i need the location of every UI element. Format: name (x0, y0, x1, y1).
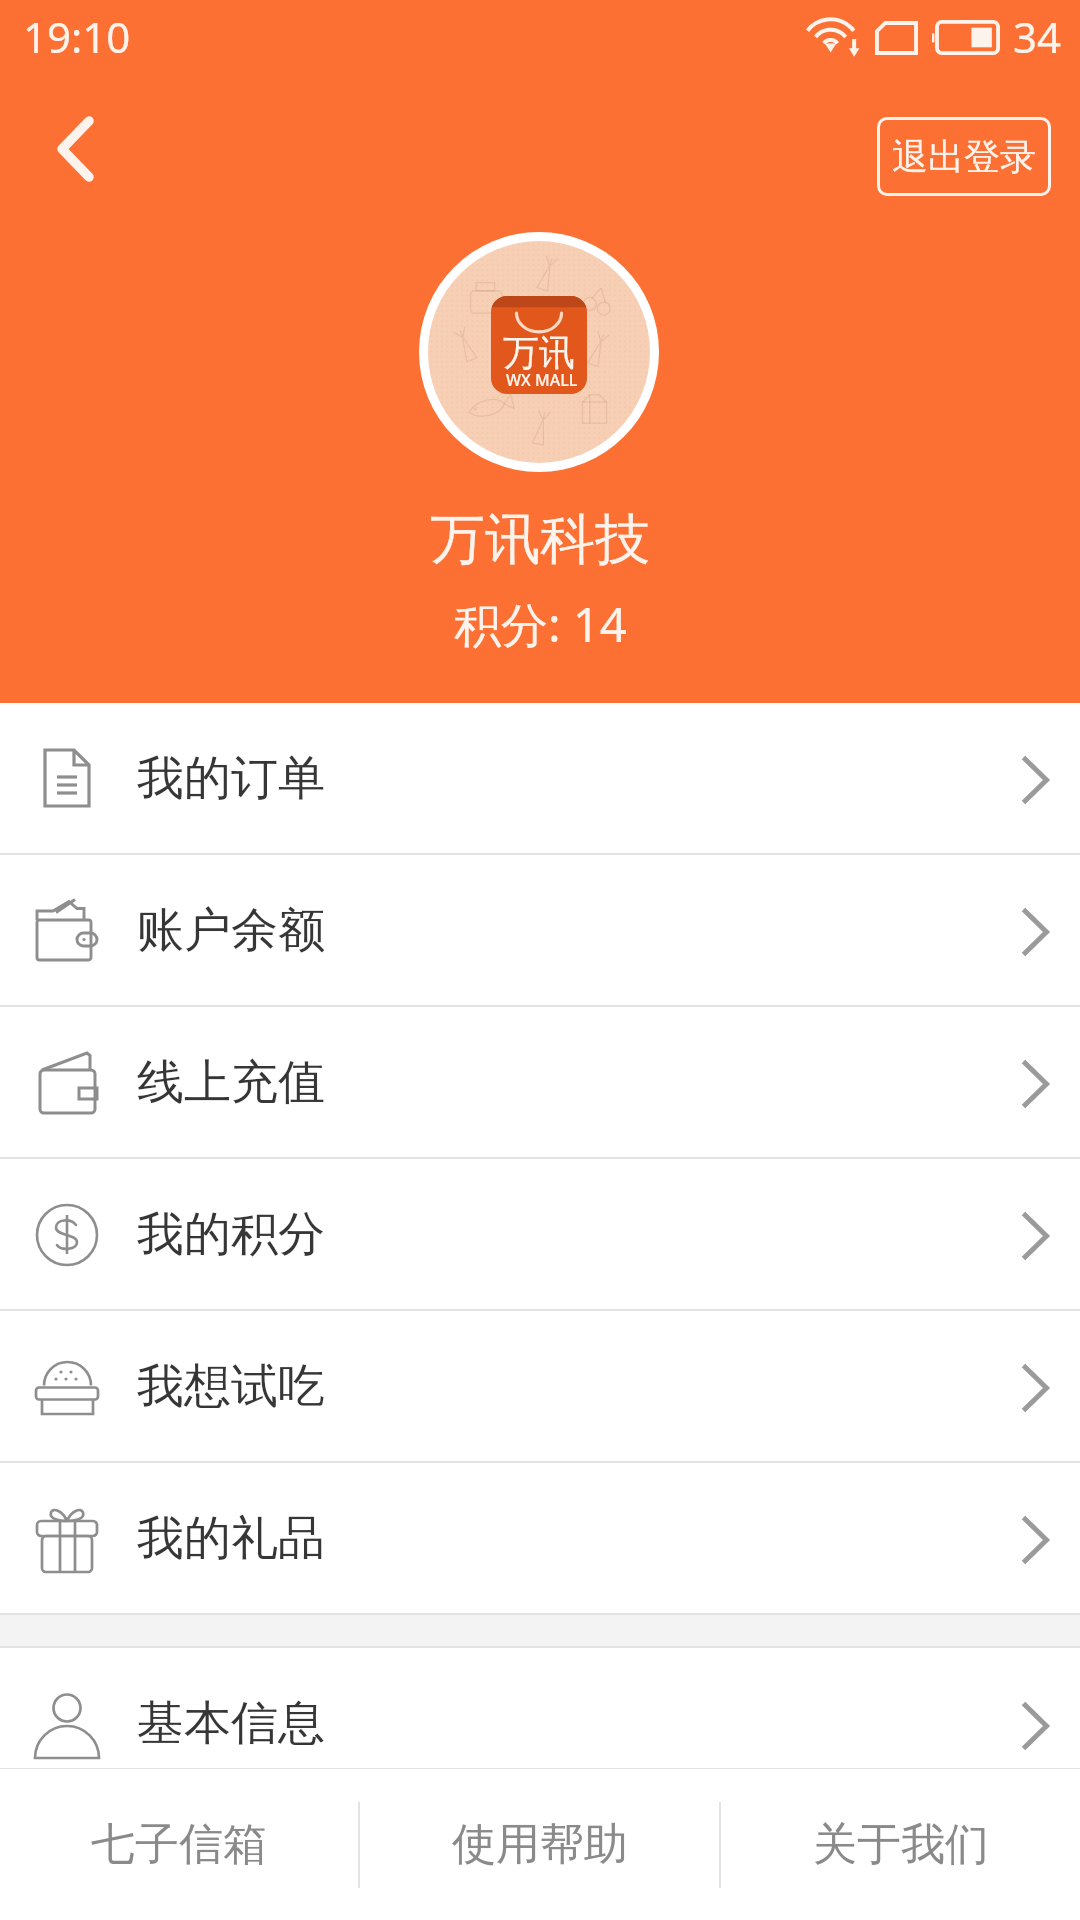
button[interactable]: 我的礼品 (0, 1463, 1080, 1613)
button[interactable]: 使用帮助 (360, 1769, 719, 1920)
staticText: 账户余额 (137, 901, 325, 960)
button[interactable]: 账户余额 (0, 855, 1080, 1005)
button[interactable]: 我的订单 (0, 703, 1080, 853)
button[interactable]: 我的积分 (0, 1159, 1080, 1309)
staticText: WX MALL (506, 369, 578, 391)
staticText: 19:10 (23, 8, 131, 65)
button[interactable]: 我想试吃 (0, 1311, 1080, 1461)
staticText: 使用帮助 (452, 1817, 628, 1872)
button[interactable]: 七子信箱 (0, 1769, 358, 1920)
staticText: 积分: 14 (454, 592, 627, 656)
staticText: 万讯科技 (430, 505, 650, 574)
button[interactable]: 基本信息 (0, 1671, 1080, 1776)
staticText: 基本信息 (137, 1694, 325, 1753)
button[interactable]: 关于我们 (721, 1769, 1080, 1920)
staticText: 万讯 (503, 330, 575, 375)
staticText: 七子信箱 (91, 1817, 267, 1872)
button[interactable]: Back (20, 94, 130, 204)
staticText: 线上充值 (137, 1053, 325, 1112)
staticText: 我的订单 (137, 749, 325, 808)
staticText: 34 (1013, 8, 1062, 65)
staticText: 我的礼品 (137, 1509, 325, 1568)
staticText: 我想试吃 (137, 1357, 325, 1416)
button[interactable]: 线上充值 (0, 1007, 1080, 1157)
staticText: 退出登录 (892, 134, 1036, 179)
staticText: 关于我们 (813, 1817, 989, 1872)
staticText: 我的积分 (137, 1205, 325, 1264)
button[interactable]: 退出登录 (877, 117, 1051, 196)
